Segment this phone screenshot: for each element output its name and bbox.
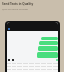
- button[interactable]: Message: [39, 41, 58, 45]
- button[interactable]: Message: [37, 52, 58, 58]
- button[interactable]: Message: [38, 46, 58, 51]
- staticText: Send Texts in Quality: [2, 2, 34, 6]
- staticText: Quick and secure messages: [2, 8, 29, 11]
- button[interactable]: Chat header: [7, 22, 58, 31]
- button[interactable]: Message: [41, 37, 58, 40]
